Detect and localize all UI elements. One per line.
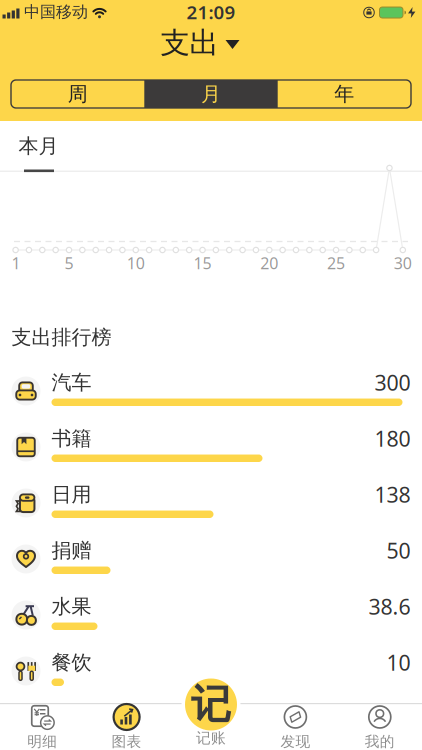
staticText: 明细 xyxy=(27,732,57,750)
button[interactable]: 明细 xyxy=(0,704,84,750)
staticText: 本月 xyxy=(18,134,58,158)
button[interactable]: 汽车 xyxy=(0,363,422,419)
staticText: 发现 xyxy=(280,732,310,750)
button[interactable]: 周 xyxy=(11,80,144,108)
staticText: 38.6 xyxy=(368,592,410,621)
staticText: 记 xyxy=(191,680,231,729)
staticText: 25 xyxy=(327,252,345,274)
staticText: 年 xyxy=(334,82,354,106)
button[interactable]: 图表 xyxy=(84,704,169,750)
button[interactable]: 水果 xyxy=(0,587,422,643)
staticText: 汽车 xyxy=(51,370,91,395)
staticText: 21:09 xyxy=(186,0,235,24)
staticText: 周 xyxy=(68,82,88,106)
staticText: 日用 xyxy=(51,482,91,507)
button[interactable]: 月 xyxy=(144,80,278,108)
staticText: 捐赠 xyxy=(51,538,91,563)
staticText: 15 xyxy=(193,252,211,274)
button[interactable]: 捐赠 xyxy=(0,531,422,587)
staticText: 记账 xyxy=(196,729,226,747)
staticText: 300 xyxy=(374,368,410,397)
staticText: 支出 xyxy=(160,25,218,61)
staticText: 180 xyxy=(374,424,410,453)
button[interactable]: 本月 xyxy=(8,124,68,168)
staticText: 30 xyxy=(394,252,412,274)
staticText: 图表 xyxy=(112,732,142,750)
staticText: 书籍 xyxy=(51,426,91,451)
staticText: 10 xyxy=(127,252,145,274)
button[interactable]: 日用 xyxy=(0,475,422,531)
staticText: 50 xyxy=(386,536,410,565)
button[interactable]: 餐饮 xyxy=(0,643,422,699)
staticText: 水果 xyxy=(51,594,91,619)
button[interactable]: 发现 xyxy=(253,704,338,750)
staticText: 中国移动 xyxy=(24,2,88,22)
staticText: 5 xyxy=(64,252,73,274)
staticText: 10 xyxy=(386,648,410,677)
button[interactable]: 书籍 xyxy=(0,419,422,475)
button[interactable]: 记账 xyxy=(171,675,251,745)
staticText: 20 xyxy=(260,252,278,274)
staticText: 我的 xyxy=(365,732,395,750)
staticText: 月 xyxy=(201,82,221,106)
staticText: 餐饮 xyxy=(51,650,91,675)
staticText: 支出排行榜 xyxy=(11,325,111,350)
staticText: 1 xyxy=(11,252,20,274)
button[interactable]: 年 xyxy=(278,80,411,108)
button[interactable]: 支出 xyxy=(160,25,239,61)
button[interactable]: 我的 xyxy=(338,704,422,750)
staticText: 138 xyxy=(374,480,410,509)
